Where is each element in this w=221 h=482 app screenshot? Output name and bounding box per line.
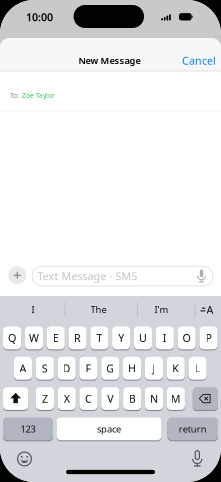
- button[interactable]: Add attachment: [8, 266, 26, 284]
- staticText: P: [205, 331, 211, 345]
- button[interactable]: L: [188, 356, 206, 380]
- staticText: To:: [10, 91, 19, 100]
- button[interactable]: R: [68, 326, 86, 350]
- button[interactable]: Autofill: [198, 301, 216, 317]
- button[interactable]: K: [167, 356, 185, 380]
- button[interactable]: B: [123, 387, 141, 410]
- button[interactable]: I: [3, 299, 63, 320]
- staticText: Q: [8, 331, 16, 345]
- button[interactable]: T: [90, 326, 108, 350]
- button[interactable]: Message text field: [31, 266, 213, 286]
- button[interactable]: I: [156, 326, 174, 350]
- staticText: space: [97, 423, 121, 435]
- button[interactable]: W: [25, 326, 43, 350]
- staticText: I: [31, 303, 34, 316]
- button[interactable]: To:: [0, 72, 221, 111]
- button[interactable]: I'm: [137, 299, 185, 320]
- staticText: T: [96, 331, 102, 345]
- button[interactable]: A: [14, 356, 32, 380]
- button[interactable]: 123: [3, 417, 53, 441]
- staticText: V: [107, 391, 113, 406]
- button[interactable]: F: [79, 356, 97, 380]
- button[interactable]: U: [134, 326, 152, 350]
- button[interactable]: H: [123, 356, 141, 380]
- staticText: return: [179, 423, 207, 435]
- staticText: J: [152, 361, 155, 375]
- staticText: I'm: [154, 303, 168, 316]
- button[interactable]: Delete: [193, 387, 218, 410]
- staticText: New Message: [78, 54, 140, 67]
- button[interactable]: The: [65, 299, 131, 320]
- staticText: Text Message · SMS: [37, 269, 137, 283]
- staticText: A: [19, 361, 26, 375]
- button[interactable]: Cancel: [179, 50, 219, 70]
- staticText: G: [106, 361, 114, 375]
- button[interactable]: S: [36, 356, 54, 380]
- staticText: U: [139, 331, 147, 345]
- button[interactable]: O: [177, 326, 196, 350]
- button[interactable]: P: [199, 326, 217, 350]
- staticText: H: [128, 361, 136, 375]
- button[interactable]: Dictate: [194, 268, 208, 284]
- button[interactable]: Q: [3, 326, 21, 350]
- staticText: Z: [42, 391, 48, 406]
- button[interactable]: X: [58, 387, 76, 410]
- button[interactable]: E: [47, 326, 65, 350]
- button[interactable]: D: [57, 356, 76, 380]
- staticText: Cancel: [182, 53, 216, 68]
- staticText: K: [172, 361, 179, 375]
- button[interactable]: Emoji: [16, 451, 32, 467]
- button[interactable]: return: [167, 417, 218, 441]
- staticText: Zoe Taylor: [22, 91, 55, 100]
- staticText: N: [150, 391, 158, 406]
- staticText: O: [183, 331, 191, 345]
- staticText: Y: [118, 331, 124, 345]
- button[interactable]: Y: [112, 326, 130, 350]
- button[interactable]: space: [56, 417, 161, 441]
- staticText: F: [85, 361, 91, 375]
- staticText: X: [64, 391, 70, 406]
- staticText: L: [194, 361, 200, 375]
- staticText: E: [53, 331, 59, 345]
- staticText: D: [63, 361, 71, 375]
- staticText: A: [206, 302, 213, 317]
- button[interactable]: C: [79, 387, 97, 410]
- staticText: M: [171, 391, 181, 406]
- button[interactable]: Dictation: [190, 449, 204, 466]
- button[interactable]: M: [167, 387, 185, 410]
- staticText: I: [163, 331, 167, 345]
- button[interactable]: Z: [36, 387, 54, 410]
- staticText: S: [42, 361, 48, 375]
- staticText: B: [129, 391, 136, 406]
- staticText: The: [90, 303, 106, 316]
- staticText: 123: [20, 423, 35, 435]
- button[interactable]: V: [101, 387, 119, 410]
- button[interactable]: J: [145, 356, 163, 380]
- button[interactable]: N: [145, 387, 163, 410]
- button[interactable]: Shift: [3, 387, 28, 410]
- staticText: W: [29, 331, 39, 345]
- staticText: 10:00: [26, 10, 53, 24]
- staticText: C: [85, 391, 92, 406]
- button[interactable]: G: [101, 356, 119, 380]
- staticText: R: [74, 331, 81, 345]
